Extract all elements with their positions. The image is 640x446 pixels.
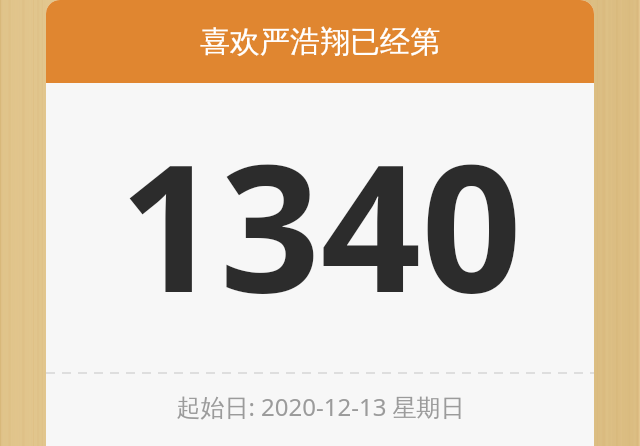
staticText: 喜欢严浩翔已经第 [200, 23, 440, 61]
button[interactable]: 喜欢严浩翔已经第 [46, 0, 594, 446]
staticText: 1340 [119, 104, 522, 344]
button[interactable]: 起始日: 2020-12-13 星期日 [46, 374, 594, 446]
staticText: 起始日: 2020-12-13 星期日 [176, 390, 465, 423]
button[interactable]: 喜欢严浩翔已经第 [46, 0, 594, 83]
